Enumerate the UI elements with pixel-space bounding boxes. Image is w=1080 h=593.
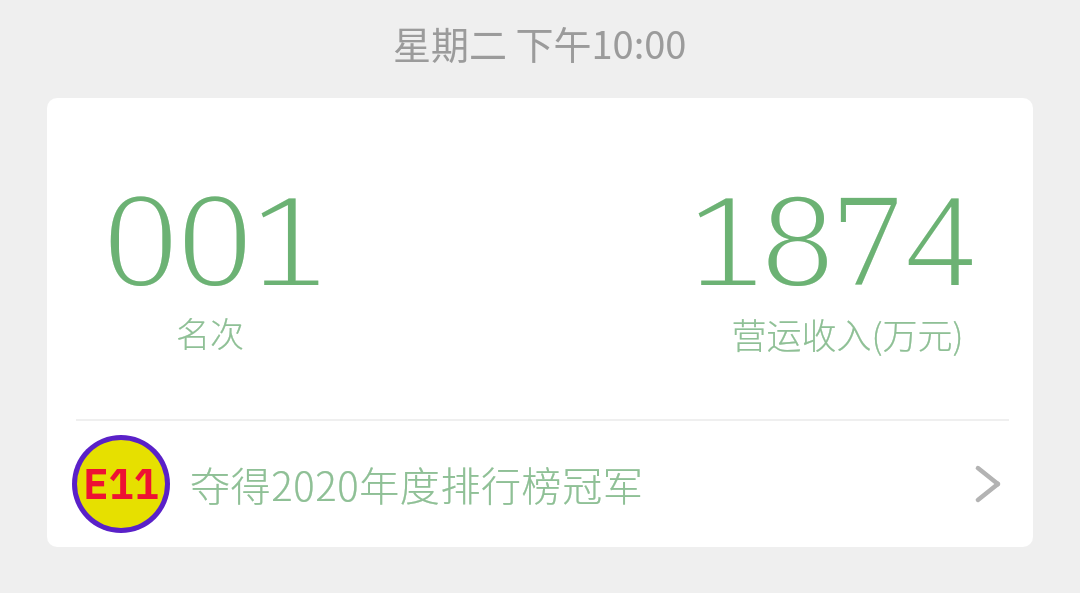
staticText: 001 <box>103 158 327 319</box>
other: 查看详情 <box>974 465 1000 503</box>
staticText: 星期二 下午10:00 <box>393 15 687 70</box>
staticText: 1874 <box>689 158 975 319</box>
staticText: E11 <box>83 457 159 517</box>
button[interactable]: E11 <box>47 421 1033 547</box>
staticText: 夺得2020年度排行榜冠军 <box>190 455 644 513</box>
staticText: 名次 <box>176 308 244 357</box>
staticText: 营运收入(万元) <box>731 308 964 358</box>
